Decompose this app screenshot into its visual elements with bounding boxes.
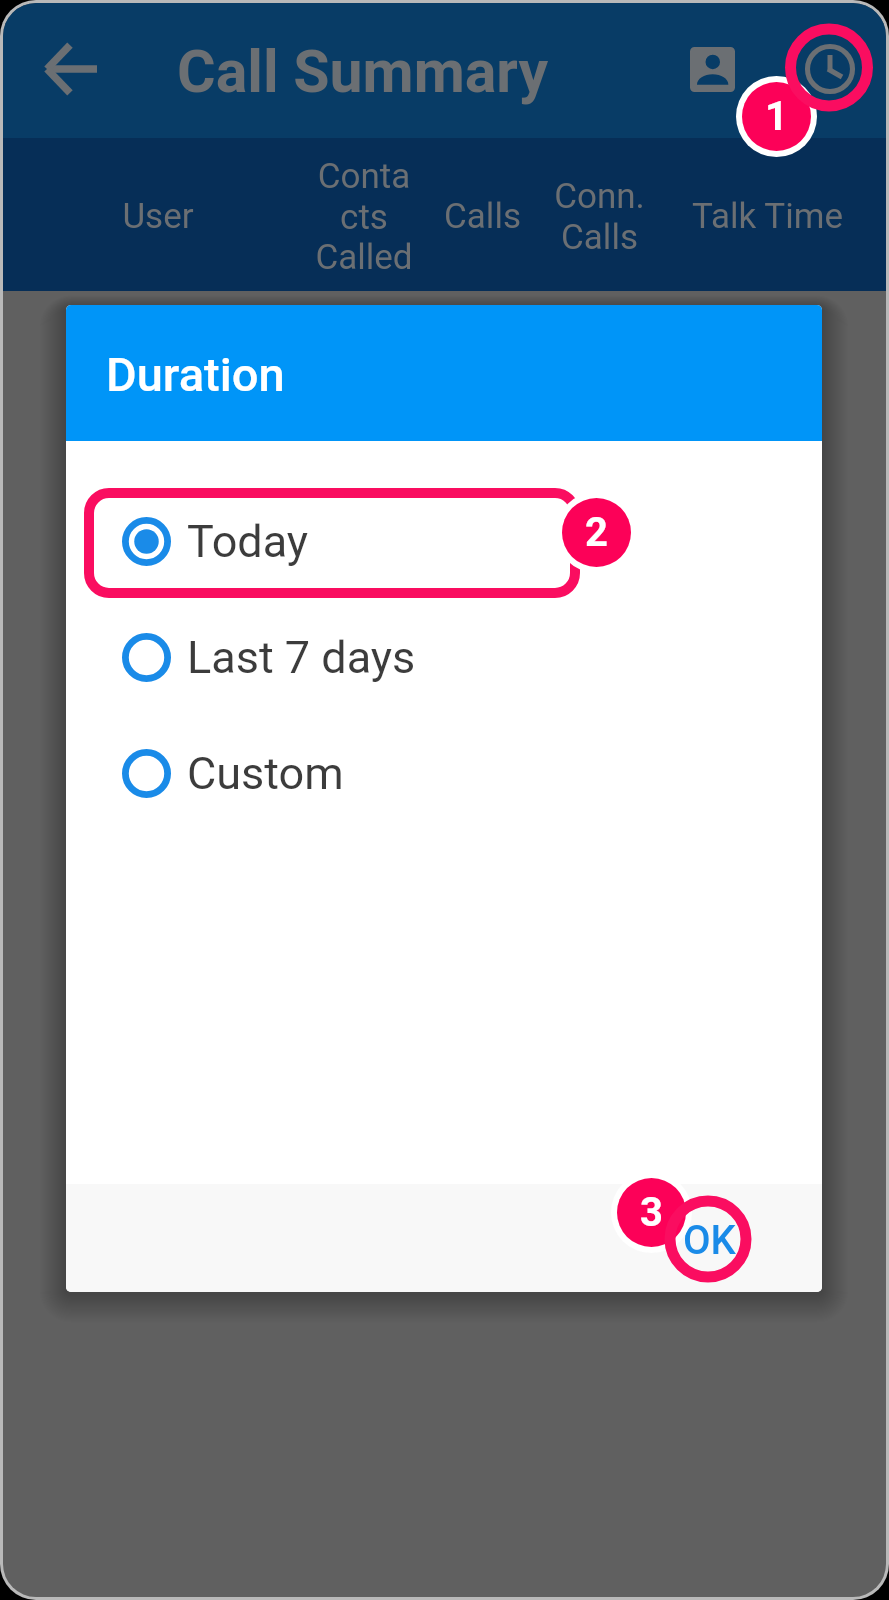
button[interactable]: Back — [27, 25, 115, 113]
staticText: Today — [187, 515, 309, 568]
staticText: 3 — [640, 1189, 663, 1236]
button[interactable]: Custom — [66, 715, 822, 831]
staticText: Talk Time — [692, 196, 843, 237]
button[interactable]: Last 7 days — [66, 599, 822, 715]
staticText: OK — [683, 1217, 736, 1264]
staticText: Custom — [187, 747, 344, 800]
staticText: Conn. Calls — [554, 176, 645, 257]
staticText: User — [122, 196, 194, 237]
button[interactable]: Contacts — [668, 25, 756, 113]
staticText: 2 — [585, 509, 608, 556]
button[interactable]: OK — [655, 1199, 764, 1282]
staticText: Calls — [444, 196, 521, 237]
staticText: Conta cts Called — [315, 156, 413, 277]
staticText: Call Summary — [177, 37, 549, 106]
button[interactable]: Duration — [786, 25, 874, 113]
staticText: Duration — [106, 347, 285, 402]
staticText: Last 7 days — [187, 631, 416, 684]
button[interactable]: Today — [66, 483, 822, 599]
staticText: 1 — [765, 93, 788, 140]
